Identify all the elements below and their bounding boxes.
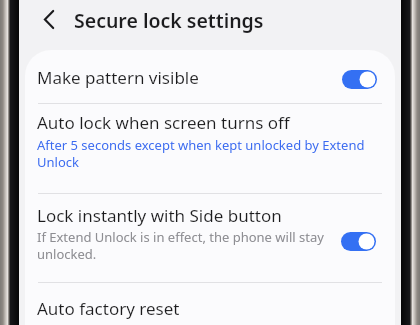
button[interactable]: Lock instantly with Side button [25,194,395,273]
staticText: Auto lock when screen turns off [37,111,290,134]
staticText: Auto factory reset [37,297,180,320]
button[interactable]: Auto lock when screen turns off [25,104,395,181]
staticText: Make pattern visible [37,66,199,89]
staticText: After 5 seconds except when kept unlocke… [37,136,365,171]
button[interactable]: Make pattern visible [25,56,395,98]
staticText: Lock instantly with Side button [37,204,282,227]
button[interactable] [37,5,65,33]
staticText: If Extend Unlock is in effect, the phone… [37,228,324,263]
button[interactable] [342,70,377,89]
button[interactable]: Auto factory reset [25,284,395,325]
staticText: Secure lock settings [74,7,264,34]
button[interactable] [341,232,376,251]
